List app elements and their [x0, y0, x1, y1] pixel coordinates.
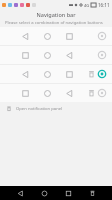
button[interactable] [0, 27, 112, 45]
staticText: 4G [84, 3, 90, 8]
button[interactable] [0, 46, 112, 64]
button[interactable]: Home [32, 186, 56, 200]
button[interactable] [0, 65, 112, 83]
staticText: 16:11 [98, 2, 110, 8]
button[interactable] [0, 84, 112, 102]
staticText: Please select a combination of navigatio… [5, 20, 103, 26]
button[interactable]: Back [8, 186, 32, 200]
button[interactable]: Recents [56, 186, 80, 200]
staticText: Navigation bar [36, 11, 76, 18]
staticText: Open notification panel [16, 106, 63, 112]
button[interactable]: Notifications [80, 186, 104, 200]
